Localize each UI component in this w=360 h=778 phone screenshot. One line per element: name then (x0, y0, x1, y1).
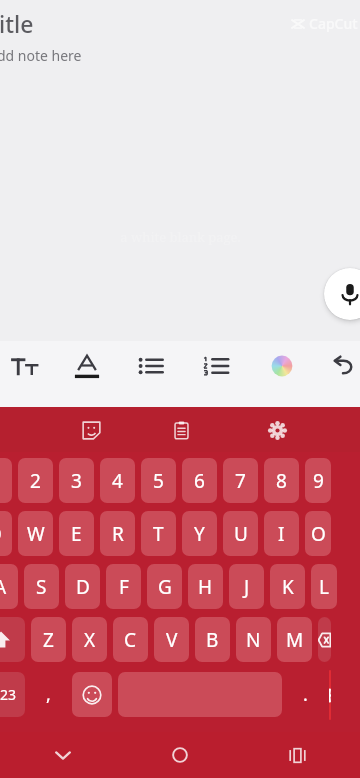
staticText: 2 (30, 468, 41, 494)
staticText: Y (194, 521, 205, 547)
button[interactable]: Backspace (318, 617, 331, 662)
staticText: U (234, 521, 248, 547)
button[interactable]: 2 (18, 458, 53, 503)
button[interactable]: . (288, 672, 323, 717)
staticText: G (158, 574, 172, 600)
button[interactable]: C (113, 617, 148, 662)
staticText: T (153, 521, 164, 547)
button[interactable]: 1 (0, 458, 12, 503)
staticText: 5 (153, 468, 164, 494)
staticText: O (311, 521, 326, 547)
button[interactable]: 7 (223, 458, 258, 503)
button[interactable]: F (106, 564, 141, 609)
button[interactable]: A (0, 564, 18, 609)
button[interactable]: D (65, 564, 100, 609)
button[interactable]: G (147, 564, 182, 609)
button[interactable]: K (270, 564, 305, 609)
staticText: S (36, 574, 47, 600)
staticText: M (286, 627, 304, 653)
button[interactable]: Undo (326, 349, 360, 383)
button[interactable]: Text size (8, 349, 42, 383)
staticText: C (124, 627, 137, 653)
staticText: N (246, 627, 261, 653)
button[interactable]: Recent apps (282, 740, 312, 770)
button[interactable]: 5 (141, 458, 176, 503)
staticText: Title (0, 8, 34, 39)
button[interactable]: H (188, 564, 223, 609)
button[interactable]: 9 (305, 458, 331, 503)
staticText: Z (43, 627, 54, 653)
staticText: E (71, 521, 82, 547)
staticText: W (27, 521, 45, 547)
button[interactable]: Home (165, 740, 195, 770)
staticText: 8 (276, 468, 287, 494)
staticText: J (244, 574, 250, 600)
button[interactable]: T (141, 511, 176, 556)
button[interactable]: V (154, 617, 189, 662)
button[interactable]: Back (48, 740, 78, 770)
staticText: I (278, 521, 285, 547)
button[interactable]: 6 (182, 458, 217, 503)
staticText: , (46, 682, 51, 707)
staticText: X (84, 627, 96, 653)
button[interactable]: Y (182, 511, 217, 556)
button[interactable]: I (264, 511, 299, 556)
button[interactable]: L (311, 564, 337, 609)
button[interactable]: Numbered list (199, 349, 233, 383)
staticText: L (319, 574, 329, 600)
button[interactable]: Text color (70, 349, 104, 383)
button[interactable]: Enter (329, 670, 331, 720)
button[interactable]: , (31, 672, 66, 717)
button[interactable]: Shift (0, 617, 25, 662)
staticText: Q (0, 521, 2, 547)
staticText: K (282, 574, 294, 600)
staticText: D (76, 574, 90, 600)
button[interactable]: Highlight color (265, 349, 299, 383)
button[interactable]: N (236, 617, 271, 662)
button[interactable]: Emoji (72, 672, 112, 717)
staticText: 6 (194, 468, 205, 494)
button[interactable]: W (18, 511, 53, 556)
staticText: V (166, 627, 178, 653)
button[interactable]: Voice input (324, 268, 360, 320)
staticText: 7 (235, 468, 246, 494)
button[interactable]: S (24, 564, 59, 609)
button[interactable]: Clipboard (166, 415, 196, 445)
button[interactable]: ?123 (0, 672, 25, 717)
staticText: CapCut (309, 14, 358, 33)
staticText: H (198, 574, 213, 600)
button[interactable]: Stickers (76, 415, 106, 445)
button[interactable]: E (59, 511, 94, 556)
button[interactable]: 8 (264, 458, 299, 503)
button[interactable]: U (223, 511, 258, 556)
staticText: Add note here (0, 46, 82, 65)
staticText: 4 (112, 468, 123, 494)
staticText: 9 (313, 468, 324, 494)
button[interactable]: 4 (100, 458, 135, 503)
staticText: ?123 (0, 685, 17, 704)
button[interactable]: Bullet list (134, 349, 168, 383)
staticText: B (206, 627, 219, 653)
button[interactable]: 3 (59, 458, 94, 503)
button[interactable]: O (305, 511, 331, 556)
button[interactable]: Q (0, 511, 12, 556)
button[interactable]: B (195, 617, 230, 662)
button[interactable]: Z (31, 617, 66, 662)
button[interactable]: J (229, 564, 264, 609)
staticText: A (0, 574, 7, 600)
button[interactable]: M (277, 617, 312, 662)
staticText: F (119, 574, 129, 600)
button[interactable]: Space (118, 672, 282, 717)
staticText: 3 (71, 468, 82, 494)
button[interactable]: Keyboard settings (262, 415, 292, 445)
staticText: . (303, 682, 308, 707)
button[interactable]: X (72, 617, 107, 662)
button[interactable]: R (100, 511, 135, 556)
staticText: R (112, 521, 124, 547)
